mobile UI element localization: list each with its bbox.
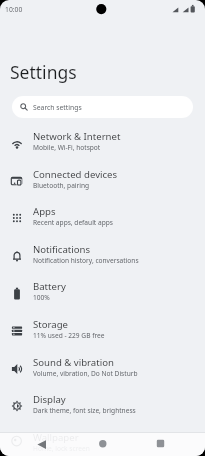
button[interactable]: Battery: [0, 274, 205, 312]
button[interactable]: [69, 432, 137, 456]
staticText: Notification history, conversations: [33, 256, 139, 265]
staticText: Storage: [33, 318, 68, 331]
staticText: Sound & vibration: [33, 356, 114, 369]
button[interactable]: Wallpaper: [0, 425, 205, 456]
staticText: Wallpaper: [33, 431, 79, 444]
staticText: Notifications: [33, 243, 91, 256]
button[interactable]: Notifications: [0, 237, 205, 274]
staticText: Apps: [33, 205, 56, 218]
staticText: 10:00: [5, 5, 23, 14]
staticText: Volume, vibration, Do Not Disturb: [33, 369, 138, 378]
staticText: Network & Internet: [33, 130, 121, 143]
staticText: Display: [33, 393, 66, 406]
button[interactable]: Network & Internet: [0, 124, 205, 162]
button[interactable]: Storage: [0, 312, 205, 350]
staticText: Dark theme, font size, brightness: [33, 406, 136, 415]
staticText: Connected devices: [33, 168, 118, 181]
button[interactable]: Display: [0, 387, 205, 425]
staticText: Settings: [10, 60, 77, 84]
staticText: 11% used - 229 GB free: [33, 331, 105, 340]
staticText: Home, lock screen: [33, 444, 90, 453]
button[interactable]: [137, 432, 205, 456]
staticText: Search settings: [33, 103, 82, 112]
button[interactable]: Connected devices: [0, 162, 205, 199]
button[interactable]: Search settings: [12, 96, 193, 118]
button[interactable]: Apps: [0, 199, 205, 237]
staticText: 100%: [33, 293, 50, 302]
staticText: Recent apps, default apps: [33, 218, 113, 227]
staticText: Battery: [33, 280, 66, 293]
staticText: Mobile, Wi-Fi, hotspot: [33, 143, 101, 152]
button[interactable]: Sound & vibration: [0, 350, 205, 387]
button[interactable]: [0, 432, 69, 456]
staticText: Bluetooth, pairing: [33, 181, 90, 190]
